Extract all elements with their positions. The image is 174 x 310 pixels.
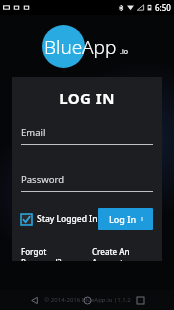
staticText: Log In (109, 213, 137, 225)
button[interactable]: Email (21, 126, 153, 145)
staticText: Password (21, 173, 64, 186)
staticText: Forgot Password? (21, 246, 82, 261)
staticText: Email (21, 126, 46, 139)
button[interactable]: Back (26, 292, 42, 308)
staticText: Blue (44, 34, 83, 60)
staticText: Create An Account (92, 246, 153, 261)
staticText: © 2014-2016 BlueApp.io |1.1.2 (44, 296, 131, 304)
button[interactable]: Forgot Password? (21, 246, 82, 261)
button[interactable]: Recents (132, 292, 148, 308)
button[interactable]: Home (79, 292, 95, 308)
staticText: .io (120, 47, 128, 57)
staticText: Stay Logged In (37, 213, 98, 225)
button[interactable]: Password (21, 173, 153, 192)
staticText: App (82, 34, 117, 60)
button[interactable]: Create An Account (92, 246, 153, 261)
staticText: LOG IN (21, 88, 153, 108)
button[interactable]: Stay Logged In (21, 211, 98, 227)
button[interactable]: Log In (98, 208, 153, 230)
staticText: 6:50 (155, 2, 171, 13)
